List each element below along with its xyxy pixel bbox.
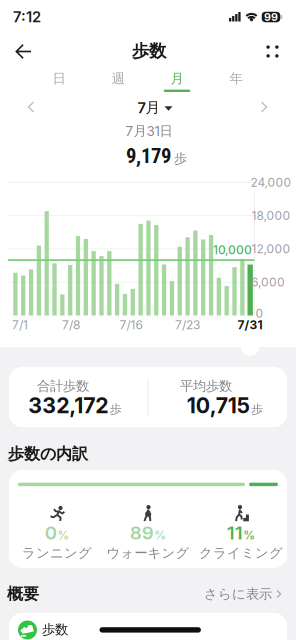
- staticText: 日: [52, 70, 65, 87]
- staticText: 12,000: [251, 242, 290, 256]
- staticText: %: [154, 528, 166, 542]
- staticText: さらに表示: [204, 586, 272, 602]
- button[interactable]: 月: [152, 65, 202, 91]
- staticText: 0: [255, 306, 263, 321]
- staticText: ウォーキング: [106, 545, 189, 561]
- staticText: 歩数の内訳: [8, 444, 88, 464]
- staticText: 7:12: [13, 8, 41, 26]
- staticText: 7/23: [175, 318, 200, 332]
- staticText: 合計歩数: [37, 378, 89, 394]
- button[interactable]: 年: [211, 65, 261, 91]
- staticText: 11: [227, 522, 243, 544]
- staticText: 歩数: [132, 40, 166, 62]
- staticText: %: [57, 528, 69, 542]
- staticText: 歩: [110, 402, 122, 417]
- staticText: 10,715: [187, 393, 250, 418]
- staticText: 歩: [174, 150, 187, 167]
- staticText: 歩: [251, 402, 263, 417]
- staticText: 月: [170, 70, 183, 87]
- staticText: 18,000: [251, 208, 290, 223]
- staticText: 99: [264, 11, 278, 23]
- button[interactable]: [249, 92, 279, 122]
- staticText: 332,172: [28, 393, 108, 418]
- staticText: 24,000: [250, 175, 291, 189]
- button[interactable]: 週: [93, 65, 143, 91]
- staticText: 年: [229, 70, 242, 87]
- staticText: 10,000: [213, 243, 252, 257]
- staticText: 概要: [7, 584, 39, 604]
- button[interactable]: 日: [34, 65, 84, 91]
- button[interactable]: 7月: [125, 94, 185, 120]
- staticText: クライミング: [199, 545, 283, 561]
- staticText: 7/8: [62, 318, 80, 332]
- staticText: 7/31: [237, 318, 262, 332]
- button[interactable]: 歩数: [9, 606, 287, 640]
- staticText: 7月: [137, 98, 160, 116]
- staticText: 0: [45, 522, 57, 544]
- staticText: 週: [111, 70, 124, 87]
- staticText: ランニング: [22, 545, 92, 561]
- staticText: 歩数: [42, 621, 68, 638]
- staticText: %: [243, 528, 255, 542]
- staticText: 平均歩数: [180, 378, 232, 394]
- button[interactable]: [16, 92, 46, 122]
- button[interactable]: さらに表示: [204, 582, 282, 606]
- staticText: 7月31日: [125, 123, 172, 139]
- staticText: 7/1: [12, 318, 28, 332]
- button[interactable]: [254, 33, 290, 69]
- staticText: 7/16: [119, 318, 142, 332]
- staticText: 6,000: [251, 275, 285, 289]
- staticText: 89: [130, 522, 154, 544]
- staticText: 9,179: [126, 144, 171, 168]
- button[interactable]: [5, 33, 41, 69]
